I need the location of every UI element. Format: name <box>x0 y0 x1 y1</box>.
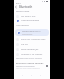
button[interactable]: Tap to see more options <box>16 67 40 70</box>
staticText: Mi Band 7 Fit Tracker <box>21 53 43 56</box>
staticText: Galaxy Buds Pro 2 <box>22 30 41 33</box>
button[interactable]: Car Kit <box>14 42 50 47</box>
staticText: Connected <box>22 33 33 36</box>
staticText: Sony WH-1000XM5 Max <box>21 38 46 41</box>
staticText: Bluetooth device settings <box>16 62 44 65</box>
button[interactable]: Device connection <box>14 64 50 68</box>
button[interactable]: Bluetooth device settings <box>14 61 50 65</box>
button[interactable]: Your devices <box>16 24 29 27</box>
button[interactable]: Desk Speaker JBL <box>14 47 50 52</box>
staticText: Device connection <box>16 65 35 68</box>
staticText: Your devices <box>16 24 29 27</box>
staticText: Now discoverable <box>21 19 40 22</box>
staticText: Tap to see more options <box>16 67 40 70</box>
button[interactable]: My Pixel 7 Pro <box>14 14 50 19</box>
staticText: Desk Speaker JBL <box>21 48 39 51</box>
staticText: My Pixel 7 Pro <box>21 15 36 18</box>
staticText: Device name <box>16 10 30 13</box>
button[interactable]: Sony WH-1000XM5 Max <box>14 37 50 42</box>
button[interactable]: Mi Band 7 Fit Tracker <box>14 52 50 57</box>
button[interactable]: Galaxy Buds Pro 2 <box>15 29 49 36</box>
button[interactable]: Now discoverable <box>14 18 50 23</box>
button[interactable]: Navigate back <box>14 5 18 9</box>
staticText: Bluetooth <box>19 5 33 9</box>
button[interactable]: Receive files from nearby <box>16 57 42 60</box>
staticText: 9:41 <box>16 1 21 4</box>
staticText: Receive files from nearby <box>16 57 42 60</box>
staticText: Car Kit <box>21 43 28 46</box>
button[interactable]: Device name <box>16 10 30 13</box>
